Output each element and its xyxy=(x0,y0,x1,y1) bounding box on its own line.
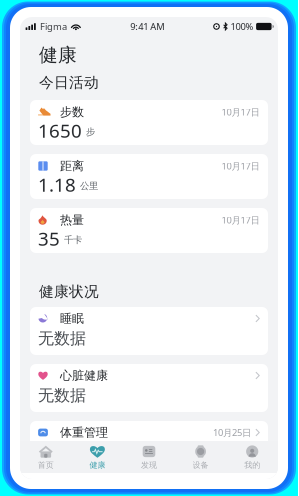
staticText: 无数据 xyxy=(38,443,86,462)
staticText: 1650 xyxy=(38,118,82,143)
button[interactable]: 设备 xyxy=(175,441,226,473)
staticText: 10月25日 xyxy=(213,426,251,439)
button[interactable]: 体重管理 xyxy=(30,421,268,469)
button[interactable]: 健康 xyxy=(72,441,123,473)
button[interactable]: 心脏健康 xyxy=(30,364,268,412)
staticText: 热量 xyxy=(60,213,84,227)
staticText: 步数 xyxy=(60,105,84,119)
staticText: 设备 xyxy=(193,460,209,470)
button[interactable]: 首页 xyxy=(20,441,72,473)
staticText: 无数据 xyxy=(38,386,86,405)
staticText: 步 xyxy=(86,126,95,138)
staticText: 35 xyxy=(38,226,60,251)
staticText: 10月17日 xyxy=(221,160,259,172)
staticText: 健康 xyxy=(39,43,77,66)
button[interactable]: 我的 xyxy=(226,441,278,473)
staticText: 我的 xyxy=(244,460,260,470)
staticText: 体重管理 xyxy=(60,425,108,440)
staticText: 公里 xyxy=(80,180,98,192)
staticText: 无数据 xyxy=(38,329,86,348)
staticText: 今日活动 xyxy=(39,73,99,91)
staticText: 1.18 xyxy=(38,172,76,197)
staticText: 100% xyxy=(231,20,254,33)
staticText: 9:41 AM xyxy=(130,20,164,33)
button[interactable]: 发现 xyxy=(123,441,175,473)
button[interactable]: 热量 xyxy=(30,208,268,253)
button[interactable]: 距离 xyxy=(30,154,268,199)
staticText: 发现 xyxy=(141,460,157,470)
button[interactable]: 步数 xyxy=(30,100,268,145)
staticText: 首页 xyxy=(38,460,54,470)
staticText: 10月17日 xyxy=(221,106,259,118)
staticText: 心脏健康 xyxy=(60,368,108,383)
staticText: 距离 xyxy=(60,159,84,173)
staticText: 健康状况 xyxy=(39,282,99,300)
staticText: 健康 xyxy=(89,460,105,470)
staticText: Figma xyxy=(40,20,67,33)
staticText: 千卡 xyxy=(64,234,82,246)
button[interactable]: 睡眠 xyxy=(30,307,268,355)
staticText: 10月17日 xyxy=(221,214,259,226)
staticText: 睡眠 xyxy=(60,311,84,326)
